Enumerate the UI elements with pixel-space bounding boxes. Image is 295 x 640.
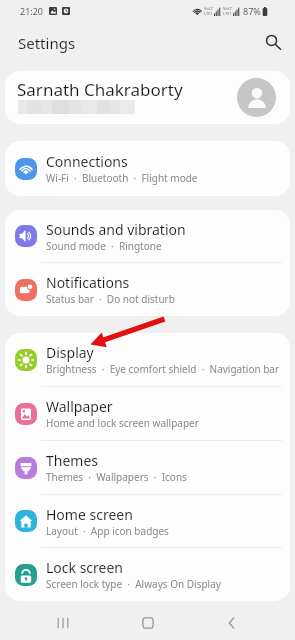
button[interactable]: Connections [5,141,290,196]
staticText: Brightness · Eye comfort shield · Naviga… [46,362,280,376]
staticText: LTE1 [204,11,213,16]
staticText: Themes · Wallpapers · Icons [46,470,187,484]
staticText: VoLT [204,6,213,11]
staticText: Layout · App icon badges [46,524,169,538]
button[interactable]: Sarnath Chakraborty [5,71,290,124]
staticText: Sounds and vibration [46,220,186,239]
staticText: Wi-Fi · Bluetooth · Flight mode [46,171,198,185]
button[interactable]: Sounds and vibration [5,210,290,263]
staticText: Settings [18,33,76,53]
button[interactable]: Notifications [5,263,290,316]
staticText: Sarnath Chakraborty [17,78,183,101]
staticText: Screen lock type · Always On Display [46,577,221,591]
button[interactable]: Themes [5,441,290,495]
staticText: Status bar · Do not disturb [46,292,175,306]
button[interactable]: Search [258,28,288,58]
staticText: VoLT [223,6,232,11]
staticText: Display [46,343,94,362]
staticText: 87% [243,5,261,17]
staticText: Connections [46,152,128,171]
button[interactable]: Home [127,603,169,640]
staticText: Notifications [46,273,130,292]
button[interactable]: Wallpaper [5,387,290,441]
staticText: Wallpaper [46,397,113,416]
button[interactable]: Back [211,603,253,640]
staticText: Themes [46,451,99,470]
button[interactable]: Recents [42,603,84,640]
button[interactable]: Home screen [5,495,290,548]
staticText: Lock screen [46,558,124,577]
staticText: 21:20 [20,5,44,17]
staticText: Home screen [46,505,133,524]
staticText: Home and lock screen wallpaper [46,416,199,430]
button[interactable]: Lock screen [5,548,290,601]
staticText: LTE1 [223,11,232,16]
staticText: Sound mode · Ringtone [46,239,162,253]
button[interactable]: Display [5,333,290,387]
